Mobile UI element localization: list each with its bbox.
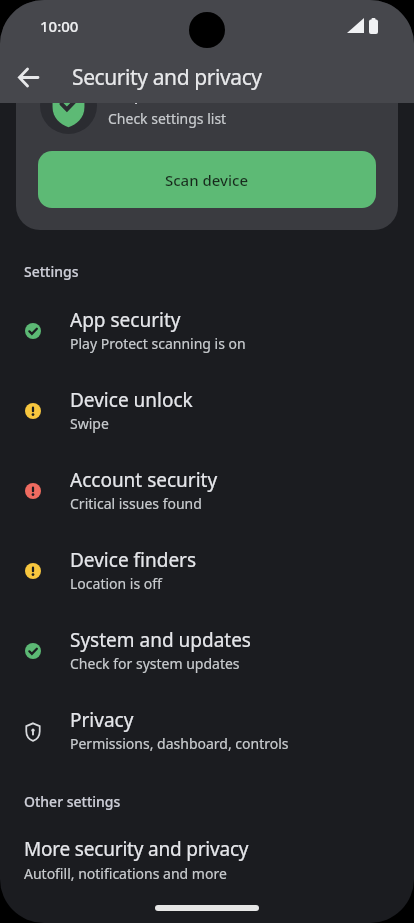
staticText: Check for system updates [70,654,240,673]
button[interactable]: More security and privacy [0,815,414,895]
button[interactable]: App security [0,292,414,372]
button[interactable]: System and updates [0,612,414,692]
staticText: Device finders [70,547,197,573]
staticText: Location is off [70,574,162,593]
staticText: Scan device [165,170,249,190]
button[interactable]: Device finders [0,532,414,612]
button[interactable]: Account security [0,452,414,532]
staticText: Settings [24,262,79,281]
button[interactable] [8,57,48,97]
staticText: Play Protect scanning is on [70,334,246,353]
button[interactable]: Device unlock [0,372,414,452]
staticText: Swipe [70,414,109,433]
staticText: Security and privacy [72,63,262,92]
staticText: More security and privacy [24,836,249,862]
staticText: Other settings [24,792,121,811]
button[interactable]: Privacy [0,692,414,772]
button[interactable]: Scan device [38,151,376,208]
staticText: Account security [70,467,218,493]
staticText: Permissions, dashboard, controls [70,734,289,753]
staticText: Device unlock [70,387,193,413]
staticText: Privacy [70,707,134,733]
staticText: System and updates [70,627,251,653]
staticText: No problems found [108,83,255,105]
staticText: 10:00 [40,16,79,36]
staticText: App security [70,307,181,333]
staticText: Critical issues found [70,494,202,513]
staticText: Check settings list [108,109,227,128]
staticText: Autofill, notifications and more [24,864,227,883]
